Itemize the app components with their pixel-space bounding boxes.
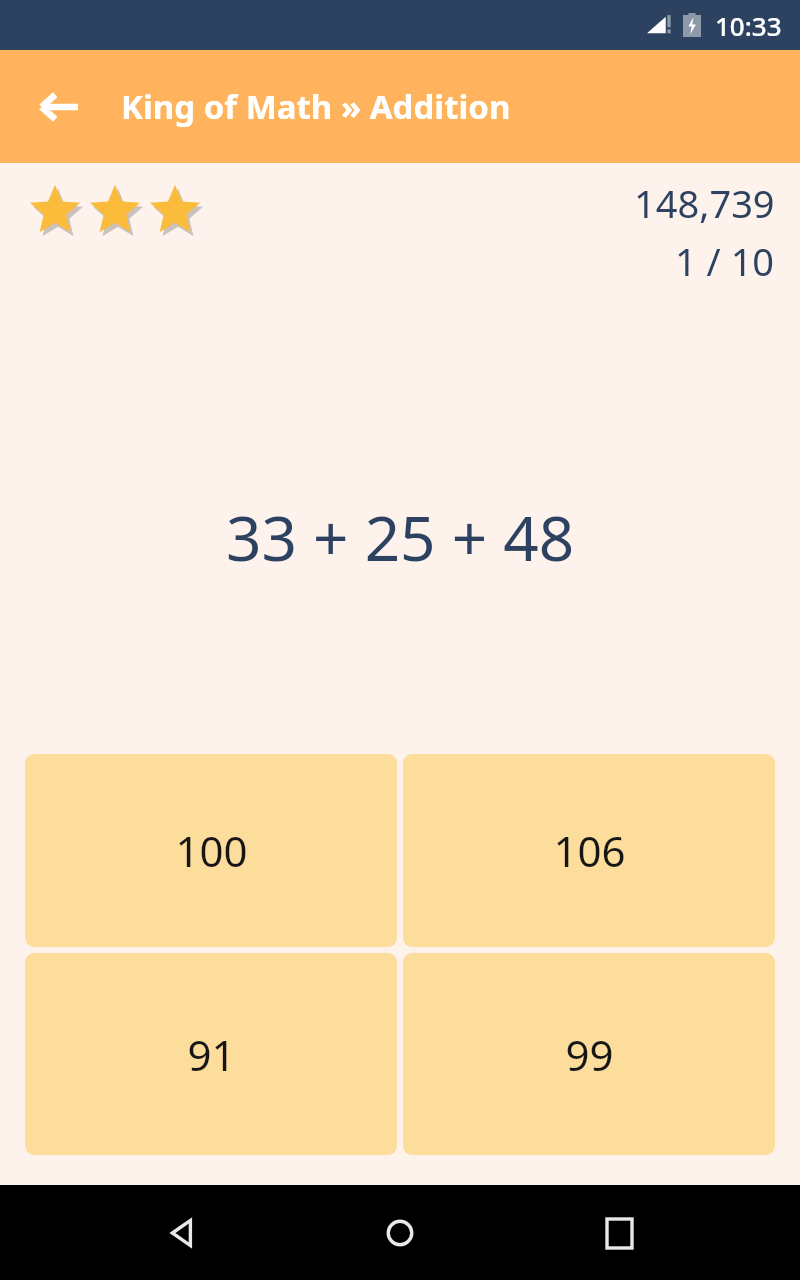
staticText: 1 / 10 [675,235,775,283]
staticText: 33 + 25 + 48 [226,495,575,579]
staticText: 91 [187,1026,236,1083]
button[interactable]: 91 [25,953,397,1155]
button[interactable]: 106 [403,754,775,947]
staticText: King of Math » Addition [121,84,511,129]
button[interactable]: Home [363,1196,437,1270]
staticText: 100 [175,822,248,879]
button[interactable]: Back [145,1196,219,1270]
button[interactable]: 100 [25,754,397,947]
staticText: 10:33 [715,8,782,43]
staticText: 148,739 [634,177,775,229]
staticText: 99 [565,1026,614,1083]
button[interactable]: Recents [582,1196,656,1270]
button[interactable]: 99 [403,953,775,1155]
button[interactable]: Back [28,76,90,138]
staticText: 106 [553,822,626,879]
